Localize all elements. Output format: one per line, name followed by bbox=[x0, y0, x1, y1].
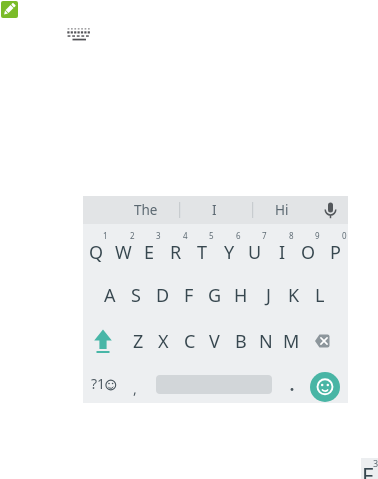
button[interactable]: I bbox=[184, 196, 244, 224]
button[interactable]: N bbox=[253, 319, 278, 363]
button[interactable]: , bbox=[123, 373, 147, 403]
staticText: B bbox=[235, 329, 247, 354]
staticText: L bbox=[315, 283, 325, 308]
button[interactable]: M bbox=[279, 319, 304, 363]
button[interactable]: K bbox=[281, 273, 307, 317]
button[interactable]: C bbox=[177, 319, 202, 363]
button[interactable]: Y bbox=[216, 230, 242, 274]
staticText: M bbox=[283, 329, 300, 354]
button[interactable]: W bbox=[110, 230, 136, 274]
button[interactable] bbox=[1, 1, 18, 18]
staticText: 2 bbox=[130, 230, 135, 240]
button[interactable]: O bbox=[295, 230, 321, 274]
staticText: 5 bbox=[209, 230, 214, 240]
button[interactable]: I bbox=[269, 230, 295, 274]
staticText: H bbox=[234, 283, 248, 308]
staticText: E bbox=[362, 460, 375, 479]
staticText: G bbox=[208, 283, 222, 308]
staticText: N bbox=[259, 329, 273, 354]
staticText: X bbox=[158, 329, 169, 354]
staticText: K bbox=[288, 283, 300, 308]
staticText: 6 bbox=[236, 230, 241, 240]
staticText: V bbox=[209, 329, 220, 354]
button[interactable]: Q bbox=[83, 230, 109, 274]
button[interactable]: X bbox=[151, 319, 176, 363]
button[interactable]: D bbox=[150, 273, 176, 317]
staticText: The bbox=[134, 201, 158, 219]
staticText: C bbox=[184, 329, 196, 354]
staticText: I bbox=[279, 240, 286, 265]
button[interactable]: B bbox=[228, 319, 253, 363]
staticText: 3 bbox=[373, 457, 378, 468]
button[interactable]: Hi bbox=[252, 196, 312, 224]
button[interactable] bbox=[87, 319, 121, 363]
staticText: W bbox=[115, 240, 132, 265]
staticText: 8 bbox=[289, 230, 294, 240]
button[interactable]: E bbox=[136, 230, 162, 274]
staticText: Hi bbox=[275, 201, 289, 219]
staticText: , bbox=[133, 379, 137, 398]
button[interactable]: R bbox=[163, 230, 189, 274]
staticText: P bbox=[330, 240, 341, 265]
staticText: 1 bbox=[103, 230, 108, 240]
staticText: ?1 bbox=[91, 374, 106, 393]
staticText: I bbox=[212, 201, 217, 219]
staticText: D bbox=[156, 283, 170, 308]
button[interactable]: F bbox=[176, 273, 202, 317]
button[interactable] bbox=[63, 26, 93, 44]
button[interactable]: ?1 bbox=[85, 364, 125, 402]
staticText: Z bbox=[133, 329, 144, 354]
staticText: E bbox=[144, 240, 155, 265]
staticText: F bbox=[184, 283, 194, 308]
button[interactable]: S bbox=[123, 273, 149, 317]
button[interactable]: T bbox=[189, 230, 215, 274]
staticText: 0 bbox=[342, 230, 347, 240]
staticText: R bbox=[170, 240, 182, 265]
staticText: T bbox=[197, 240, 208, 265]
button[interactable]: Z bbox=[126, 319, 151, 363]
staticText: A bbox=[104, 283, 116, 308]
button[interactable] bbox=[317, 198, 341, 222]
button[interactable]: A bbox=[97, 273, 123, 317]
button[interactable]: H bbox=[228, 273, 254, 317]
button[interactable] bbox=[305, 319, 339, 363]
staticText: U bbox=[248, 240, 262, 265]
staticText: O bbox=[301, 240, 316, 265]
button[interactable]: P bbox=[322, 230, 348, 274]
staticText: Y bbox=[224, 240, 235, 265]
staticText: J bbox=[266, 283, 271, 308]
staticText: 3 bbox=[156, 230, 161, 240]
staticText: 4 bbox=[183, 230, 188, 240]
button[interactable]: G bbox=[202, 273, 228, 317]
button[interactable]: L bbox=[307, 273, 333, 317]
staticText: 7 bbox=[262, 230, 267, 240]
button[interactable]: The bbox=[101, 196, 191, 224]
staticText: S bbox=[131, 283, 141, 308]
button[interactable]: J bbox=[255, 273, 281, 317]
button[interactable] bbox=[310, 372, 340, 402]
button[interactable]: U bbox=[242, 230, 268, 274]
button[interactable] bbox=[280, 373, 304, 403]
staticText: Q bbox=[89, 240, 104, 265]
staticText: 9 bbox=[315, 230, 320, 240]
button[interactable]: V bbox=[202, 319, 227, 363]
